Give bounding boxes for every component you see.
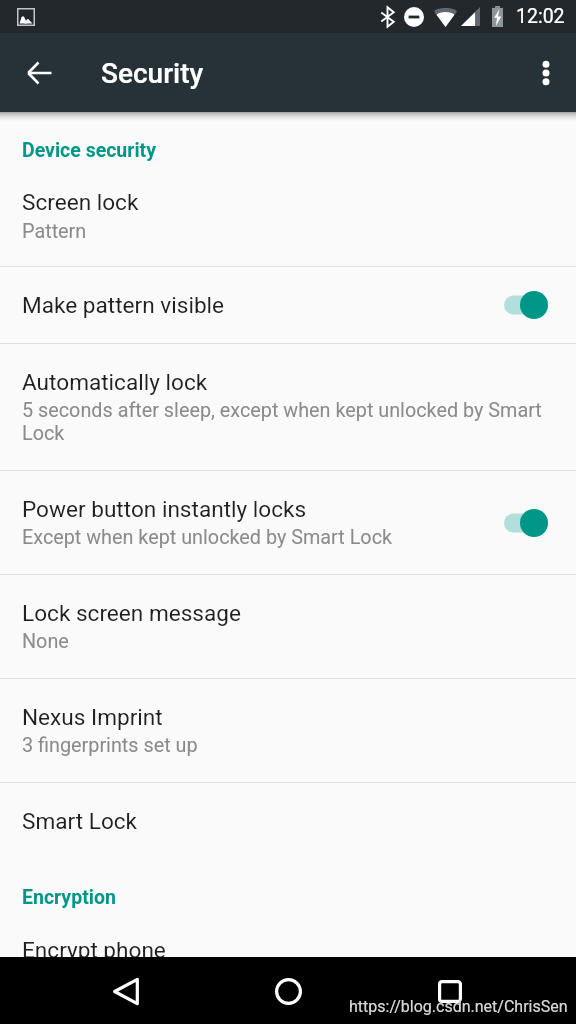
staticText: Pattern [22, 220, 87, 243]
button[interactable]: Home [258, 961, 318, 1021]
button[interactable]: Back [13, 46, 66, 99]
button[interactable]: Toggle [500, 503, 552, 543]
button[interactable]: More options [519, 46, 572, 99]
staticText: Except when kept unlocked by Smart Lock [22, 526, 393, 549]
button[interactable]: Back [96, 961, 156, 1021]
staticText: Smart Lock [22, 808, 138, 834]
staticText: Lock screen message [22, 600, 241, 626]
button[interactable]: Nexus Imprint [0, 679, 576, 782]
staticText: Encryption [22, 886, 116, 909]
staticText: Encrypt phone [22, 937, 166, 963]
staticText: Make pattern visible [22, 292, 225, 318]
button[interactable]: Smart Lock [0, 783, 576, 885]
button[interactable]: Screen lock [0, 165, 576, 243]
button[interactable]: Power button instantly locks [0, 471, 576, 574]
staticText: Device security [22, 139, 156, 162]
staticText: Automatically lock [22, 369, 208, 395]
staticText: 5 seconds after sleep, except when kept … [22, 399, 546, 445]
staticText: None [22, 630, 69, 653]
button[interactable]: Make pattern visible [0, 267, 576, 343]
button[interactable]: Encrypt phone [0, 912, 576, 988]
staticText: Security [101, 57, 204, 90]
staticText: Power button instantly locks [22, 496, 307, 522]
staticText: Nexus Imprint [22, 704, 163, 730]
button[interactable]: Recents [420, 961, 480, 1021]
button[interactable]: Lock screen message [0, 575, 576, 678]
staticText: https://blog.csdn.net/ChrisSen [349, 997, 568, 1016]
staticText: Screen lock [22, 189, 139, 215]
staticText: 12:02 [516, 5, 565, 28]
staticText: 3 fingerprints set up [22, 734, 198, 757]
button[interactable]: Automatically lock [0, 344, 576, 470]
button[interactable]: Toggle [500, 285, 552, 325]
